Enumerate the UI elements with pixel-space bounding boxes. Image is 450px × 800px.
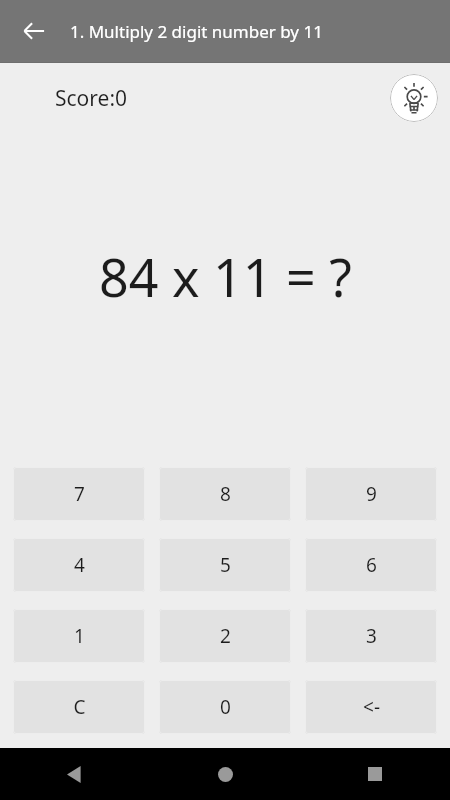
- staticText: 4: [74, 552, 85, 578]
- staticText: 5: [220, 552, 231, 578]
- button[interactable]: Back: [16, 13, 52, 49]
- button[interactable]: 4: [13, 538, 145, 592]
- staticText: 9: [366, 481, 377, 507]
- button[interactable]: 7: [13, 467, 145, 521]
- button[interactable]: 1: [13, 609, 145, 663]
- staticText: C: [73, 694, 86, 720]
- staticText: 1. Multiply 2 digit number by 11: [70, 20, 323, 43]
- staticText: 0: [220, 694, 231, 720]
- staticText: 84 x 11 = ?: [99, 241, 352, 312]
- staticText: 7: [74, 481, 85, 507]
- button[interactable]: Recent apps: [300, 748, 450, 800]
- button[interactable]: Back: [0, 748, 150, 800]
- button[interactable]: Home: [150, 748, 300, 800]
- button[interactable]: 6: [305, 538, 437, 592]
- staticText: 3: [366, 623, 377, 649]
- button[interactable]: Hint: [390, 74, 438, 122]
- staticText: 1: [74, 623, 85, 649]
- button[interactable]: 8: [159, 467, 291, 521]
- button[interactable]: 9: [305, 467, 437, 521]
- staticText: 2: [220, 623, 231, 649]
- button[interactable]: 2: [159, 609, 291, 663]
- staticText: Score:0: [55, 84, 128, 113]
- staticText: <-: [363, 694, 380, 720]
- staticText: 8: [220, 481, 231, 507]
- button[interactable]: 5: [159, 538, 291, 592]
- button[interactable]: <-: [305, 680, 437, 734]
- button[interactable]: 3: [305, 609, 437, 663]
- button[interactable]: C: [13, 680, 145, 734]
- staticText: 6: [366, 552, 377, 578]
- button[interactable]: 0: [159, 680, 291, 734]
